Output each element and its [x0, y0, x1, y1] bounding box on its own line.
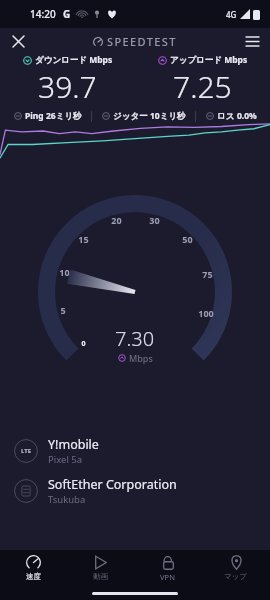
staticText: 4G	[226, 9, 237, 20]
staticText: ジッター	[113, 111, 148, 122]
button[interactable]: 速度	[0, 550, 67, 586]
staticText: 75	[202, 268, 213, 280]
staticText: ダウンロード Mbps	[35, 54, 113, 66]
staticText: Tsukuba	[48, 493, 86, 506]
staticText: 50	[182, 233, 193, 245]
button[interactable]: Menu	[240, 29, 264, 53]
staticText: 0.0%	[237, 110, 257, 122]
staticText: 39.7	[38, 66, 97, 107]
staticText: 14:20	[30, 7, 56, 21]
staticText: SoftEther Corporation	[48, 476, 177, 493]
staticText: LTE	[21, 447, 32, 455]
staticText: 30	[149, 214, 160, 226]
button[interactable]: Close	[6, 29, 30, 53]
staticText: Ping	[25, 110, 44, 122]
staticText: SPEEDTEST	[107, 34, 177, 49]
staticText: 動画	[93, 572, 108, 581]
staticText: 20	[111, 214, 122, 226]
staticText: ロス	[217, 111, 235, 122]
staticText: 15	[78, 233, 89, 245]
staticText: 速度	[26, 572, 41, 581]
staticText: VPN	[160, 572, 176, 582]
staticText: 5	[60, 304, 66, 316]
button[interactable]: マップ	[202, 550, 270, 586]
staticText: マップ	[224, 572, 248, 581]
staticText: Y!mobile	[48, 436, 99, 453]
button[interactable]: LTE	[0, 431, 270, 471]
staticText: Pixel 5a	[48, 453, 83, 466]
button[interactable]: SoftEther Corporation	[0, 471, 270, 511]
staticText: 100	[198, 307, 214, 319]
button[interactable]: VPN	[134, 550, 202, 586]
staticText: 10	[59, 266, 70, 278]
staticText: 0	[81, 339, 86, 349]
staticText: 10ミリ秒	[150, 110, 186, 122]
button[interactable]: 動画	[67, 550, 134, 586]
staticText: 7.30	[115, 325, 155, 352]
staticText: アップロード Mbps	[170, 54, 248, 66]
staticText: G	[63, 7, 71, 21]
staticText: 26ミリ秒	[46, 110, 82, 122]
staticText: 7.25	[173, 66, 232, 107]
staticText: Mbps	[129, 352, 153, 364]
